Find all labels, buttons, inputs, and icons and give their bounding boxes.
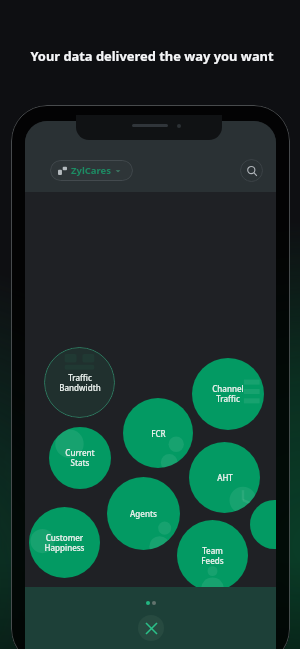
staticText: Traffic Bandwidth [59,372,101,394]
staticText: Current Stats [65,447,95,469]
button[interactable]: Channel Traffic [192,358,264,430]
staticText: Your data delivered the way you want [2,47,300,65]
button[interactable]: Traffic Bandwidth [44,347,115,418]
staticText: FCR [151,428,166,439]
staticText: AHT [217,472,233,483]
button[interactable]: Close [138,615,164,641]
button[interactable]: ZylCares [50,160,133,181]
button[interactable]: AHT [189,442,260,513]
staticText: Agents [130,508,157,519]
staticText: ZylCares [71,164,112,177]
button[interactable]: Team Feeds [177,520,248,587]
staticText: Channel Traffic [212,383,244,405]
button[interactable]: Current Stats [49,427,111,489]
button[interactable] [250,500,276,549]
button[interactable]: Search [240,159,263,182]
staticText: Team Feeds [201,545,224,567]
button[interactable]: Agents [107,477,180,550]
button[interactable]: FCR [123,398,193,468]
staticText: Customer Happiness [44,532,85,554]
button[interactable]: Customer Happiness [29,507,100,578]
